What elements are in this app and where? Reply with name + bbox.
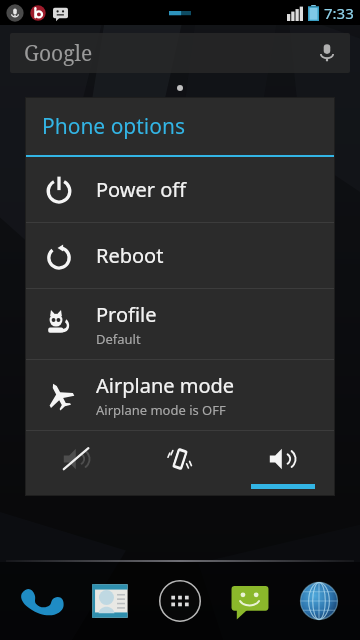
- button[interactable]: Profile: [26, 289, 334, 359]
- button[interactable]: Vibrate mode: [128, 431, 231, 495]
- button[interactable]: Google: [10, 33, 350, 73]
- button[interactable]: Phone: [12, 572, 70, 630]
- button[interactable]: Airplane mode: [26, 360, 334, 430]
- staticText: 7:33: [324, 3, 354, 23]
- staticText: Google: [24, 39, 93, 68]
- staticText: Reboot: [96, 242, 164, 269]
- button[interactable]: Reboot: [26, 223, 334, 288]
- button[interactable]: Messaging: [221, 572, 279, 630]
- button[interactable]: Power off: [26, 157, 334, 222]
- button[interactable]: Silent mode: [26, 431, 128, 495]
- button[interactable]: Apps: [151, 572, 209, 630]
- staticText: Default: [96, 330, 141, 348]
- staticText: Phone options: [42, 112, 186, 141]
- staticText: Airplane mode is OFF: [96, 401, 226, 419]
- button[interactable]: Sound on: [231, 431, 334, 495]
- button[interactable]: Contacts: [81, 572, 139, 630]
- staticText: Power off: [96, 176, 187, 203]
- staticText: Profile: [96, 301, 157, 328]
- button[interactable]: Browser: [290, 572, 348, 630]
- staticText: Airplane mode: [96, 372, 235, 399]
- button[interactable]: Voice search: [314, 40, 340, 66]
